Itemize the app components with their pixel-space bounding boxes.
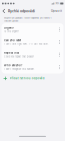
- button[interactable]: Call you later: [1, 36, 63, 48]
- staticText: Upravit: [51, 9, 62, 13]
- staticText: Who are you?: [4, 64, 22, 67]
- staticText: Rychlé odpovědi: [8, 9, 35, 13]
- button[interactable]: Who are you?: [1, 61, 63, 73]
- staticText: Urgent!: [4, 26, 14, 29]
- staticText: Is this urgent?: [4, 30, 19, 33]
- button[interactable]: Přidat rychlou odpověď: [0, 73, 65, 83]
- staticText: Could you repeat that please?: [4, 55, 34, 58]
- staticText: 76%: [55, 2, 59, 5]
- staticText: Repeat that: [4, 51, 19, 54]
- button[interactable]: Upravit: [48, 7, 65, 15]
- staticText: I can't talk right now. I'll call you la…: [4, 43, 49, 45]
- button[interactable]: Repeat that: [1, 48, 63, 61]
- staticText: Call you later: [4, 39, 21, 42]
- button[interactable]: Urgent!: [1, 23, 63, 36]
- staticText: Přidat rychlou odpověď: [10, 77, 45, 80]
- staticText: I don't recognise this number.: [4, 68, 35, 70]
- button[interactable]: Back: [0, 7, 8, 15]
- staticText: Můžete přizpůsobit rychlé odpovědi pro h…: [4, 16, 52, 22]
